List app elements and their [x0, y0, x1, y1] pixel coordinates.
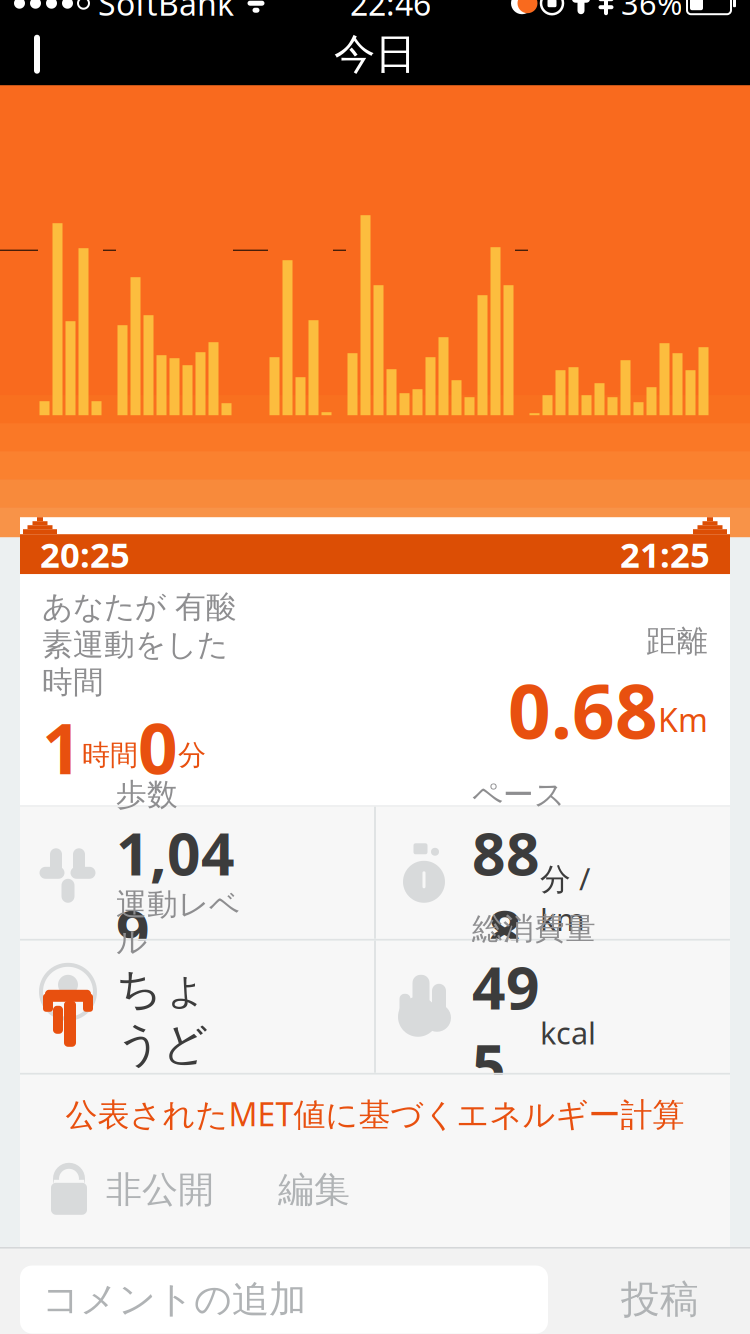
- staticText: 公表されたMET値に基づくエネルギー計算: [65, 1092, 684, 1135]
- button[interactable]: 総消費量: [376, 941, 730, 1073]
- button[interactable]: 編集: [214, 1153, 350, 1227]
- staticText: 20:25: [40, 531, 130, 577]
- staticText: 88.8: [472, 814, 540, 969]
- button[interactable]: 投稿: [590, 1265, 730, 1333]
- staticText: 1,049: [116, 814, 235, 969]
- staticText: 運動レベル: [116, 886, 240, 961]
- staticText: 0.68: [508, 660, 658, 759]
- staticText: kcal: [540, 1012, 596, 1053]
- button[interactable]: ペース: [376, 807, 730, 939]
- staticText: 今日: [334, 29, 416, 80]
- staticText: SoftBank: [98, 0, 234, 24]
- staticText: Km: [658, 698, 708, 741]
- staticText: 21:25: [620, 531, 710, 577]
- button[interactable]: 公表されたMET値に基づくエネルギー計算: [20, 1075, 730, 1153]
- staticText: 1: [42, 701, 82, 793]
- staticText: 分 / km: [540, 858, 590, 939]
- staticText: 分: [178, 738, 206, 772]
- staticText: 0: [138, 701, 178, 793]
- staticText: 36%: [621, 0, 682, 24]
- staticText: 歩数: [116, 776, 178, 814]
- button[interactable]: 非公開: [20, 1153, 214, 1227]
- staticText: 投稿: [621, 1276, 699, 1323]
- staticText: 総消費量: [472, 910, 596, 948]
- staticText: ペース: [472, 776, 565, 814]
- staticText: ちょうど良い: [116, 961, 208, 1128]
- staticText: 距離: [646, 622, 708, 660]
- staticText: 時間: [82, 738, 138, 772]
- staticText: 495: [472, 948, 540, 1103]
- staticText: あなたが 有酸素運動をした 時間: [42, 588, 237, 701]
- staticText: コメントの追加: [42, 1277, 306, 1322]
- button[interactable]: 運動レベル: [20, 941, 374, 1073]
- button[interactable]: 歩数: [20, 807, 374, 939]
- staticText: 非公開: [106, 1168, 214, 1212]
- button[interactable]: Back: [0, 23, 80, 85]
- staticText: 編集: [278, 1168, 350, 1212]
- button[interactable]: コメントの追加: [20, 1265, 548, 1333]
- staticText: 22:46: [350, 0, 431, 24]
